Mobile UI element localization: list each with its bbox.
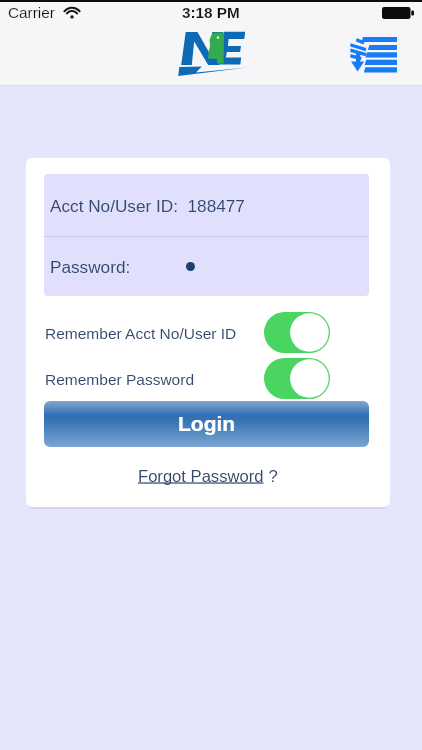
staticText: 3:18 PM xyxy=(182,4,240,21)
button[interactable]: Menu xyxy=(348,35,398,75)
staticText: Acct No/User ID: 188477 xyxy=(50,196,245,215)
button[interactable]: Toggle on xyxy=(264,358,330,399)
staticText: Password: xyxy=(50,257,131,276)
staticText: Forgot Password xyxy=(138,467,264,486)
staticText: Remember Password xyxy=(45,371,195,388)
button[interactable]: Forgot Password xyxy=(138,467,278,486)
button[interactable]: Toggle on xyxy=(264,312,330,353)
staticText: Login xyxy=(178,412,236,435)
button[interactable]: NE Home xyxy=(180,31,246,77)
button[interactable]: Login xyxy=(44,401,369,447)
staticText: Remember Acct No/User ID xyxy=(45,325,237,342)
staticText: ? xyxy=(264,467,278,486)
staticText: Carrier xyxy=(8,4,55,21)
